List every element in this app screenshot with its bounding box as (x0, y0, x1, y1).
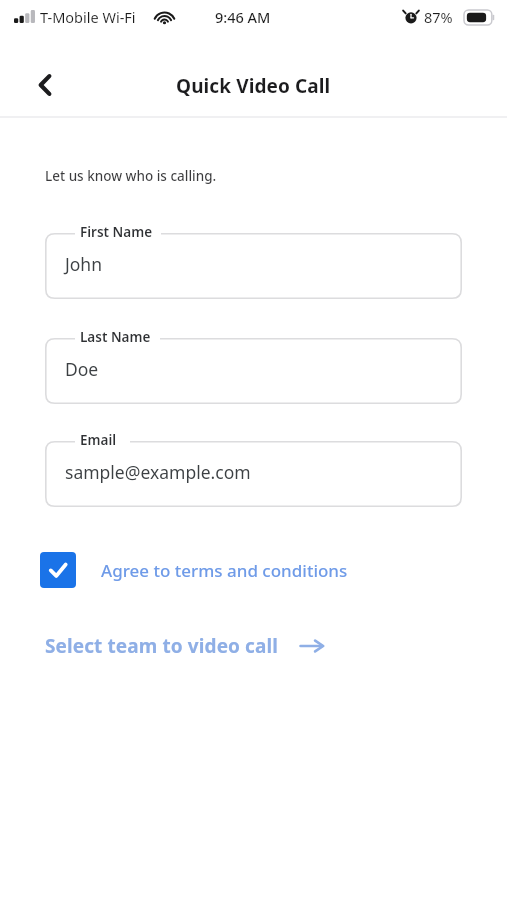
button[interactable]: Back (22, 62, 68, 108)
staticText: Email (80, 431, 117, 449)
staticText: 87% (424, 7, 453, 27)
button[interactable]: John (45, 233, 462, 299)
button[interactable]: Select team to video call (40, 624, 380, 668)
staticText: Quick Video Call (176, 73, 331, 99)
button[interactable]: Agree to terms and conditions (40, 546, 430, 594)
staticText: Let us know who is calling. (45, 167, 217, 185)
staticText: First Name (80, 223, 153, 241)
staticText: Select team to video call (45, 633, 279, 659)
button[interactable]: Doe (45, 338, 462, 404)
staticText: sample@example.com (65, 460, 251, 484)
staticText: Last Name (80, 328, 151, 346)
staticText: Doe (65, 357, 99, 381)
staticText: 9:46 AM (215, 7, 271, 27)
button[interactable]: sample@example.com (45, 441, 462, 507)
staticText: Agree to terms and conditions (101, 559, 348, 582)
staticText: John (65, 252, 102, 276)
staticText: T-Mobile Wi-Fi (40, 7, 136, 27)
